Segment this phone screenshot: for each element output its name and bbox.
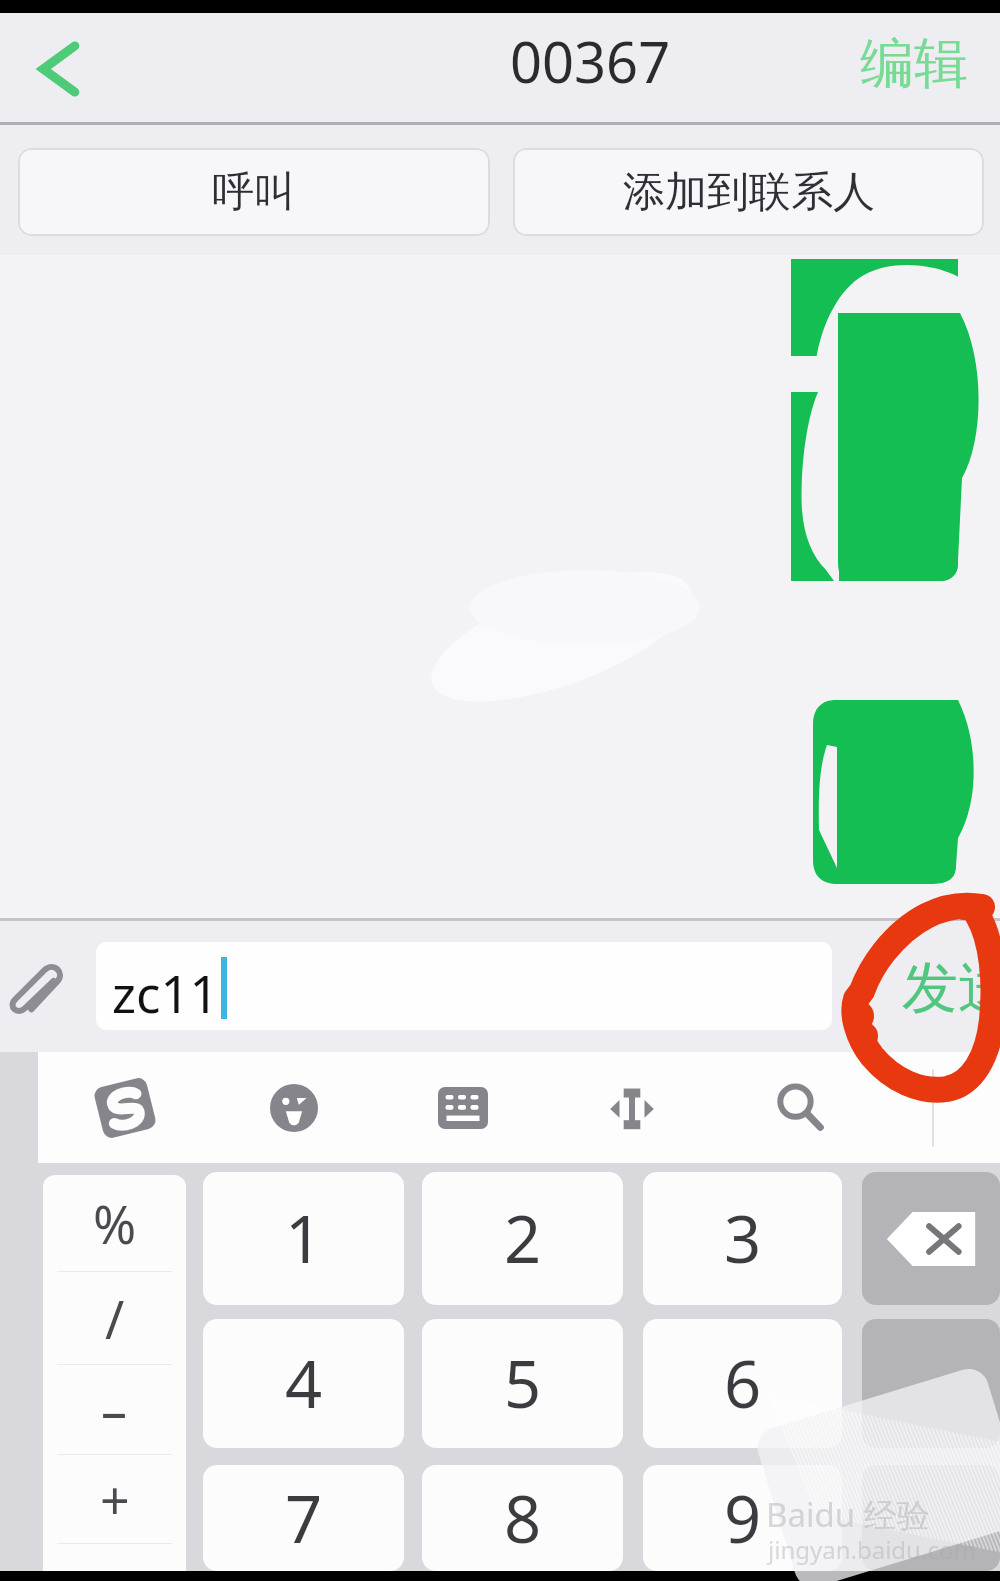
button[interactable]: Backspace [862,1465,1000,1571]
button[interactable]: 呼叫 [18,148,490,236]
button[interactable]: 3 [643,1172,842,1305]
button[interactable]: Back [26,36,92,102]
staticText: 2 [504,1194,542,1283]
button[interactable]: 发送 [852,918,1000,1052]
button[interactable]: 9 [643,1465,842,1571]
staticText: 呼叫 [212,166,296,219]
button[interactable]: – [43,1365,186,1454]
button[interactable]: 2 [422,1172,623,1305]
button[interactable]: 编辑 [860,30,968,98]
button[interactable]: Move cursor [547,1052,716,1163]
staticText: 9 [724,1474,762,1563]
button[interactable]: / [43,1272,186,1364]
button[interactable]: More [934,1052,1000,1163]
button[interactable]: % [43,1175,186,1271]
button[interactable]: 4 [203,1319,404,1448]
staticText: zc11 [112,958,219,1027]
staticText: 8 [504,1474,542,1563]
staticText: 3 [724,1194,762,1283]
staticText: 6 [724,1339,762,1428]
staticText: Baidu 经验 [766,1492,930,1537]
button[interactable]: Attach [3,960,67,1024]
staticText: % [93,1188,137,1259]
button[interactable]: Keyboard layout [378,1052,547,1163]
staticText: 1 [285,1194,323,1283]
button[interactable]: zc11 [96,942,832,1030]
button[interactable]: 6 [643,1319,842,1448]
button[interactable]: Backspace [862,1172,1000,1305]
button[interactable]: Backspace [862,1319,1000,1448]
staticText: / [105,1283,125,1354]
staticText: jingyan.baidu.com [768,1533,976,1566]
button[interactable]: + [43,1455,186,1543]
staticText: 7 [285,1474,323,1563]
button[interactable]: 7 [203,1465,404,1571]
button[interactable]: 5 [422,1319,623,1448]
staticText: 编辑 [860,30,968,98]
button[interactable]: 添加到联系人 [513,148,984,236]
staticText: – [101,1374,128,1445]
button[interactable]: Input method [41,1052,209,1163]
staticText: 5 [504,1339,542,1428]
button[interactable]: Search [716,1052,885,1163]
staticText: 00367 [510,23,671,99]
staticText: 4 [285,1339,323,1428]
button[interactable]: Emoji [209,1052,378,1163]
staticText: 发送 [902,953,1000,1024]
staticText: + [100,1464,130,1535]
staticText: 添加到联系人 [623,166,875,219]
button[interactable]: 8 [422,1465,623,1571]
button[interactable]: 1 [203,1172,404,1305]
